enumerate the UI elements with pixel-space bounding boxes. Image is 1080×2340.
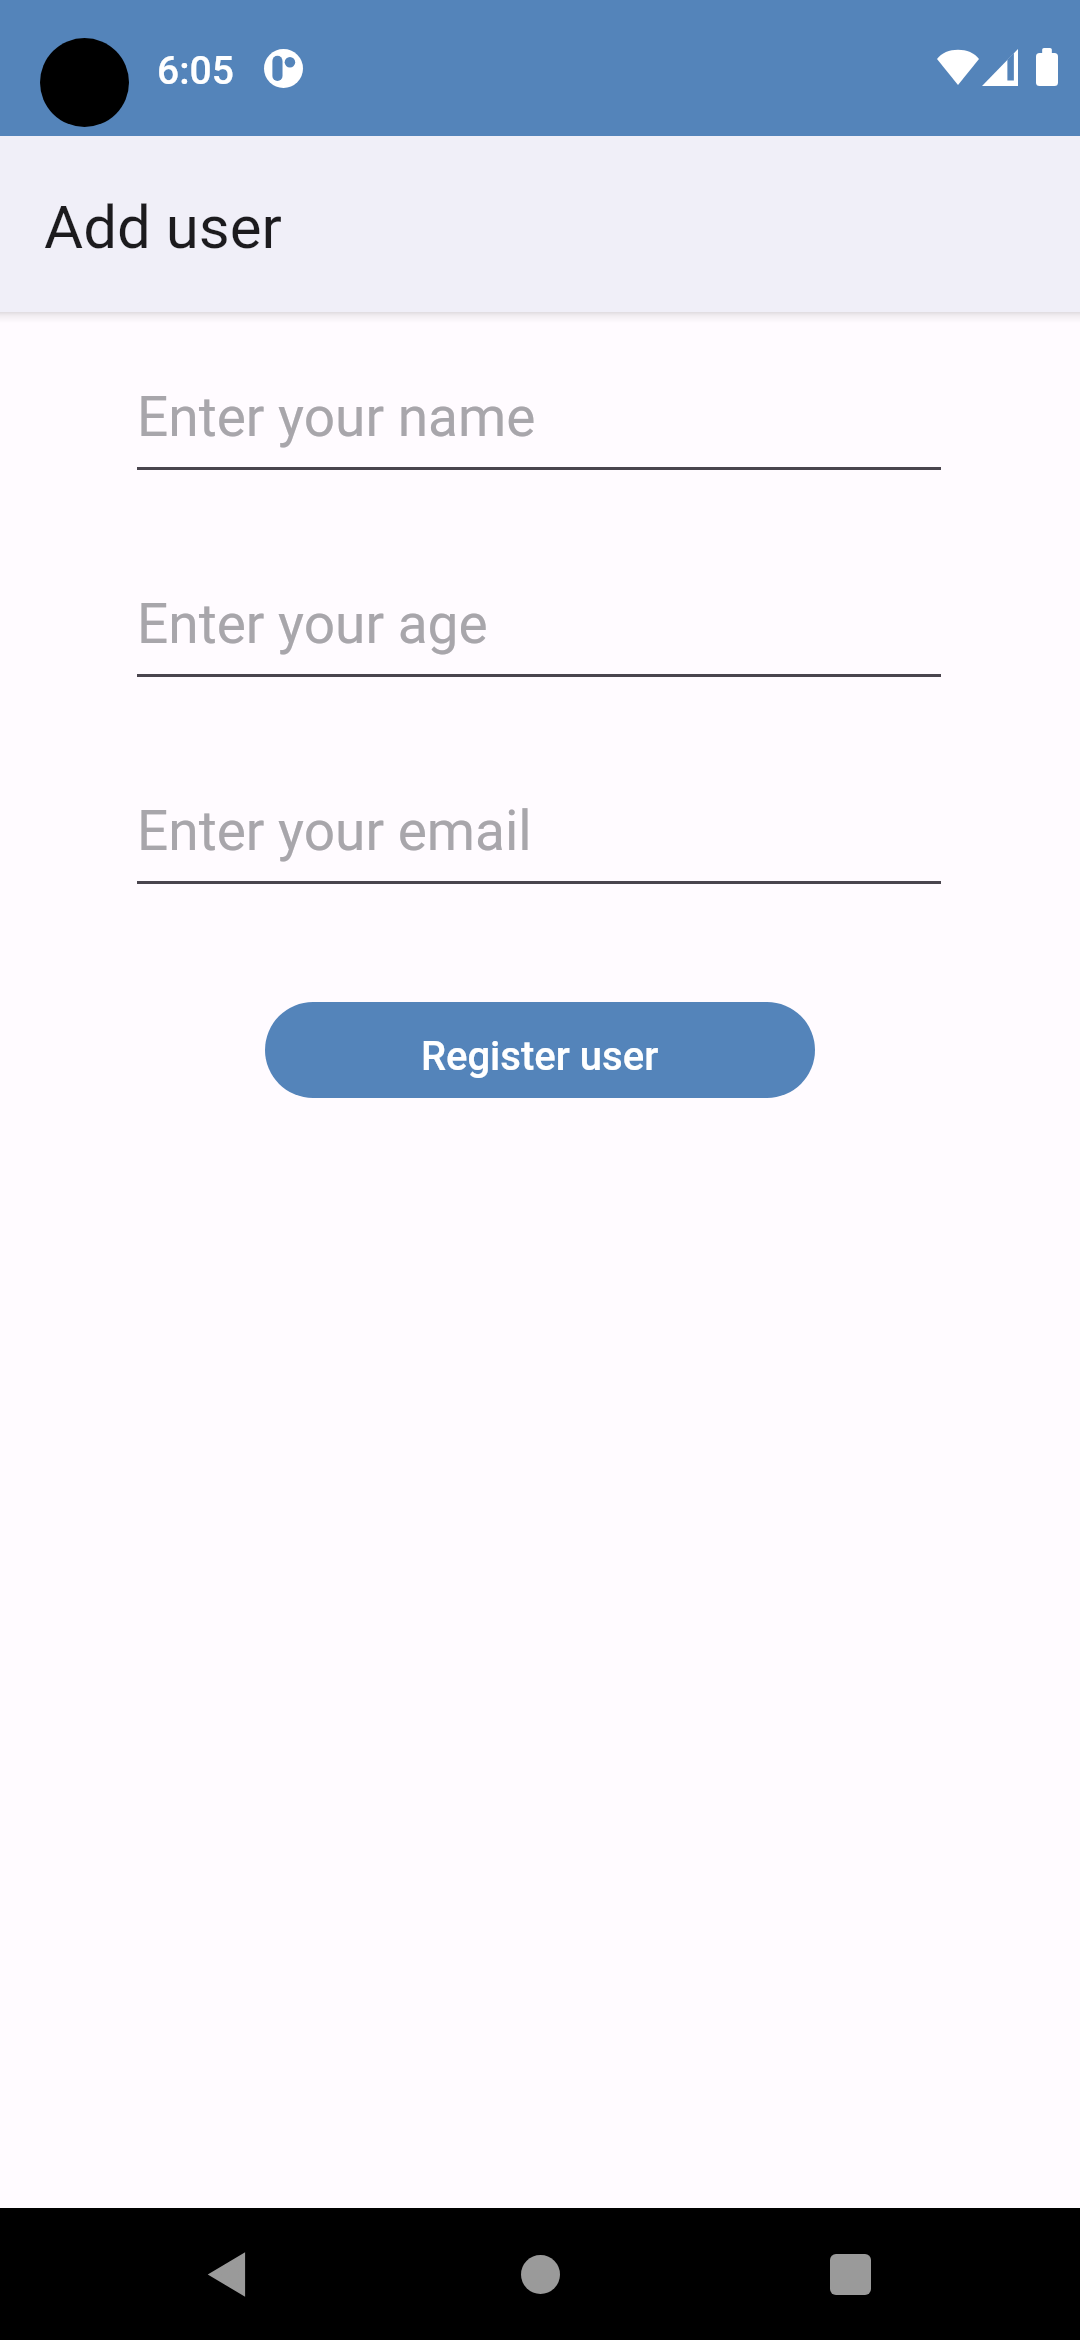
staticText: Enter your name (137, 385, 536, 449)
button[interactable]: Enter your name (137, 386, 941, 470)
staticText: Enter your email (137, 799, 532, 863)
button[interactable]: Enter your email (137, 800, 941, 884)
staticText: Add user (44, 192, 282, 262)
button[interactable]: Register user (265, 1002, 815, 1098)
staticText: Register user (421, 1033, 659, 1080)
button[interactable]: Recent apps (804, 2228, 896, 2320)
button[interactable]: Enter your age (137, 593, 941, 677)
button[interactable]: Home (494, 2228, 586, 2320)
button[interactable]: Back (180, 2228, 272, 2320)
staticText: Enter your age (137, 592, 488, 656)
staticText: 6:05 (157, 48, 234, 94)
